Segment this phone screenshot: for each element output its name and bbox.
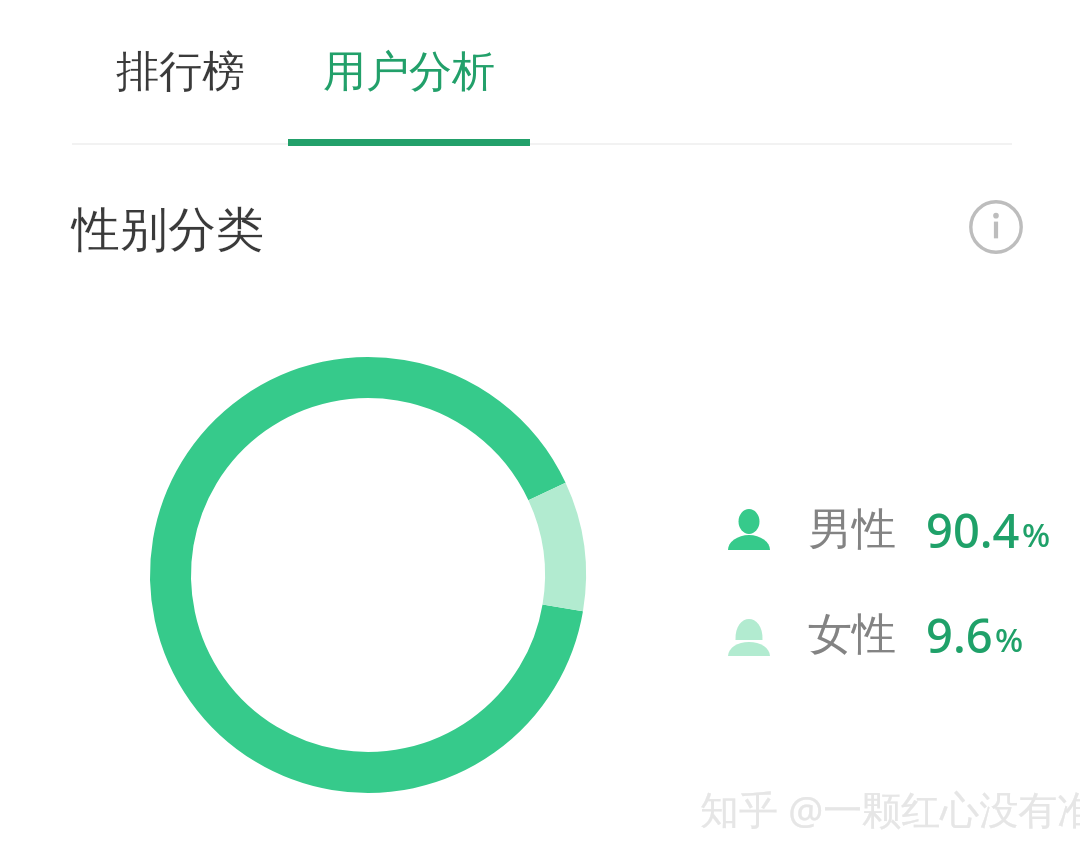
staticText: % xyxy=(995,617,1024,662)
button[interactable]: 排行榜 xyxy=(72,0,288,143)
staticText: 知乎 @一颗红心没有准备 xyxy=(700,782,1080,835)
staticText: 性别分类 xyxy=(72,200,264,260)
button[interactable]: 男性 xyxy=(724,498,1034,560)
staticText: 女性 xyxy=(808,607,896,662)
staticText: 90.4 xyxy=(926,498,1020,560)
staticText: % xyxy=(1022,512,1034,557)
staticText: 9.6 xyxy=(926,603,993,665)
button[interactable]: 说明 xyxy=(963,194,1029,260)
button[interactable]: 女性 xyxy=(724,603,1034,665)
staticText: 排行榜 xyxy=(116,45,245,99)
staticText: 男性 xyxy=(808,502,896,557)
staticText: 用户分析 xyxy=(323,45,495,99)
button[interactable]: 用户分析 xyxy=(288,0,530,147)
